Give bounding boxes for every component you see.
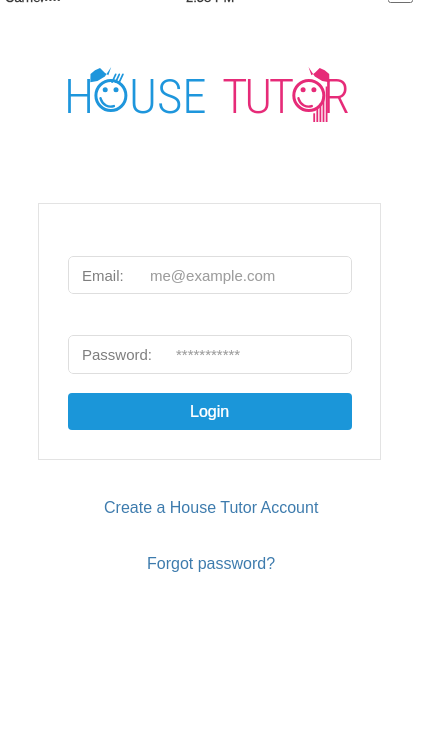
staticText: TUT [222, 68, 291, 125]
button[interactable]: Create a House Tutor Account [90, 495, 333, 521]
button[interactable]: Password: [68, 335, 352, 374]
staticText: Create a House Tutor Account [104, 499, 319, 517]
staticText: Forgot password? [147, 555, 276, 573]
staticText: 2:58 PM [186, 0, 235, 5]
staticText: *********** [176, 346, 241, 363]
staticText: me@example.com [150, 267, 276, 284]
staticText: USE [129, 68, 207, 125]
staticText: R [323, 68, 350, 125]
staticText: H [64, 68, 95, 125]
button[interactable]: Forgot password? [133, 551, 290, 577]
button[interactable]: Email: [68, 256, 352, 294]
button[interactable]: Login [68, 393, 352, 430]
staticText: Email: [82, 267, 124, 284]
staticText: Carrier [5, 0, 45, 5]
staticText: Login [190, 403, 230, 421]
staticText: Password: [82, 346, 153, 363]
